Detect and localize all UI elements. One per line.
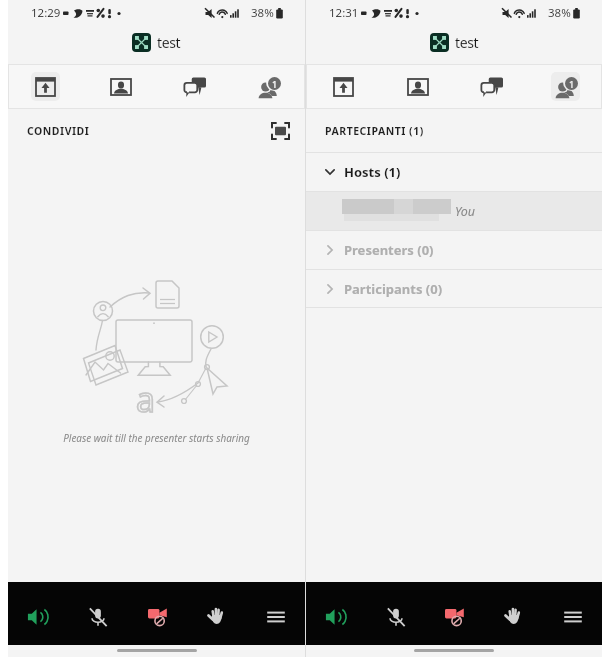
other: Chat	[477, 72, 506, 101]
staticText: test	[455, 33, 479, 52]
button[interactable]: Hosts (1)	[306, 153, 602, 191]
staticText: PARTECIPANTI (1)	[325, 124, 424, 138]
staticText: Please wait till the presenter starts sh…	[8, 431, 305, 444]
staticText: 12:31	[329, 5, 359, 21]
other: Chat	[180, 72, 209, 101]
other: Video	[403, 72, 432, 101]
button[interactable]: Video	[83, 64, 157, 109]
button[interactable]: Speaker	[306, 582, 366, 645]
button[interactable]: Share screen	[8, 64, 83, 109]
button[interactable]: Share screen	[306, 64, 380, 109]
button[interactable]: Participants (0)	[306, 270, 602, 307]
button[interactable]: Chat	[157, 64, 231, 109]
staticText: You	[455, 203, 476, 220]
button[interactable]: Video	[380, 64, 454, 109]
staticText: CONDIVIDI	[27, 124, 90, 138]
staticText: 38%	[548, 5, 571, 21]
other: Participants	[551, 72, 580, 101]
button[interactable]: Participants	[231, 64, 305, 109]
button[interactable]: More options	[543, 582, 602, 645]
button[interactable]: Raise hand	[484, 582, 543, 645]
other: Video	[106, 72, 135, 101]
button[interactable]: Camera off	[128, 582, 187, 645]
staticText: 38%	[251, 5, 274, 21]
staticText: Participants (0)	[344, 280, 443, 298]
staticText: Hosts (1)	[344, 163, 401, 181]
staticText: 12:29	[31, 5, 61, 21]
button[interactable]: Raise hand	[187, 582, 246, 645]
button[interactable]: Fit to screen	[267, 118, 293, 144]
button[interactable]: Chat	[454, 64, 528, 109]
button[interactable]: More options	[246, 582, 305, 645]
button[interactable]: Microphone muted	[68, 582, 128, 645]
staticText: 1	[569, 78, 575, 90]
button[interactable]: Camera off	[425, 582, 484, 645]
button[interactable]: Speaker	[8, 582, 68, 645]
other: Participants	[254, 72, 283, 101]
staticText: Presenters (0)	[344, 241, 434, 259]
button[interactable]: Participants	[528, 64, 602, 109]
staticText: test	[157, 33, 181, 52]
other: Share screen	[329, 72, 358, 101]
staticText: 1	[272, 78, 278, 90]
button[interactable]: Microphone muted	[366, 582, 425, 645]
other: Share screen	[31, 72, 60, 101]
button[interactable]: Presenters (0)	[306, 231, 602, 269]
